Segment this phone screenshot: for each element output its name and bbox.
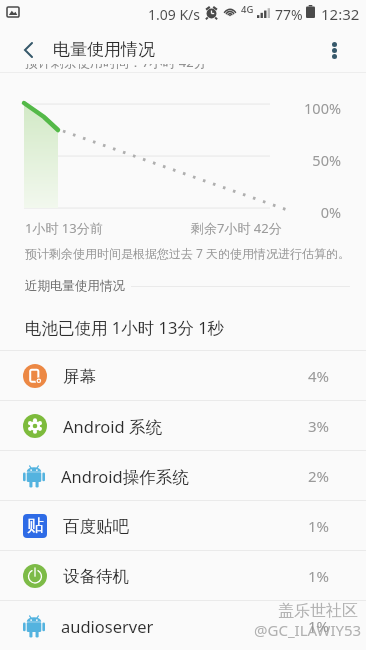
- staticText: 1.09 K/s: [148, 5, 200, 24]
- staticText: 预计剩余使用时间：7小时 42分: [25, 53, 207, 71]
- staticText: 4G: [241, 3, 254, 16]
- staticText: 盖乐世社区: [278, 601, 358, 621]
- button[interactable]: Back: [8, 30, 48, 70]
- staticText: 100%: [291, 98, 341, 118]
- staticText: 3%: [308, 416, 330, 436]
- staticText: 1%: [308, 516, 330, 536]
- staticText: audioserver: [61, 615, 154, 637]
- button[interactable]: 贴: [0, 501, 366, 551]
- staticText: 2%: [308, 466, 330, 486]
- staticText: 1小时 13分前: [25, 219, 103, 237]
- staticText: Android 系统: [63, 415, 163, 438]
- staticText: 50%: [291, 150, 341, 170]
- staticText: Android操作系统: [61, 465, 189, 488]
- staticText: 0%: [291, 202, 341, 222]
- staticText: 4%: [308, 366, 330, 386]
- staticText: 电池已使用 1小时 13分 1秒: [25, 316, 225, 339]
- staticText: @GC_ILAWIY53: [254, 620, 362, 640]
- staticText: 1%: [308, 566, 330, 586]
- staticText: 预计剩余使用时间是根据您过去 7 天的使用情况进行估算的。: [25, 245, 351, 261]
- button[interactable]: More options: [314, 30, 354, 70]
- button[interactable]: Android 系统: [0, 401, 366, 451]
- staticText: 电量使用情况: [53, 39, 155, 60]
- button[interactable]: Android操作系统: [0, 451, 366, 501]
- button[interactable]: 设备待机: [0, 551, 366, 601]
- staticText: 近期电量使用情况: [25, 278, 125, 294]
- staticText: 设备待机: [63, 566, 129, 587]
- staticText: 剩余7小时 42分: [191, 219, 282, 237]
- staticText: 77%: [275, 5, 303, 24]
- staticText: 贴: [27, 515, 44, 536]
- staticText: 12:32: [321, 4, 360, 24]
- staticText: 百度贴吧: [63, 516, 129, 537]
- staticText: 屏幕: [63, 366, 96, 387]
- button[interactable]: 屏幕: [0, 351, 366, 401]
- button[interactable]: audioserver: [0, 601, 366, 650]
- staticText: 1%: [308, 616, 330, 636]
